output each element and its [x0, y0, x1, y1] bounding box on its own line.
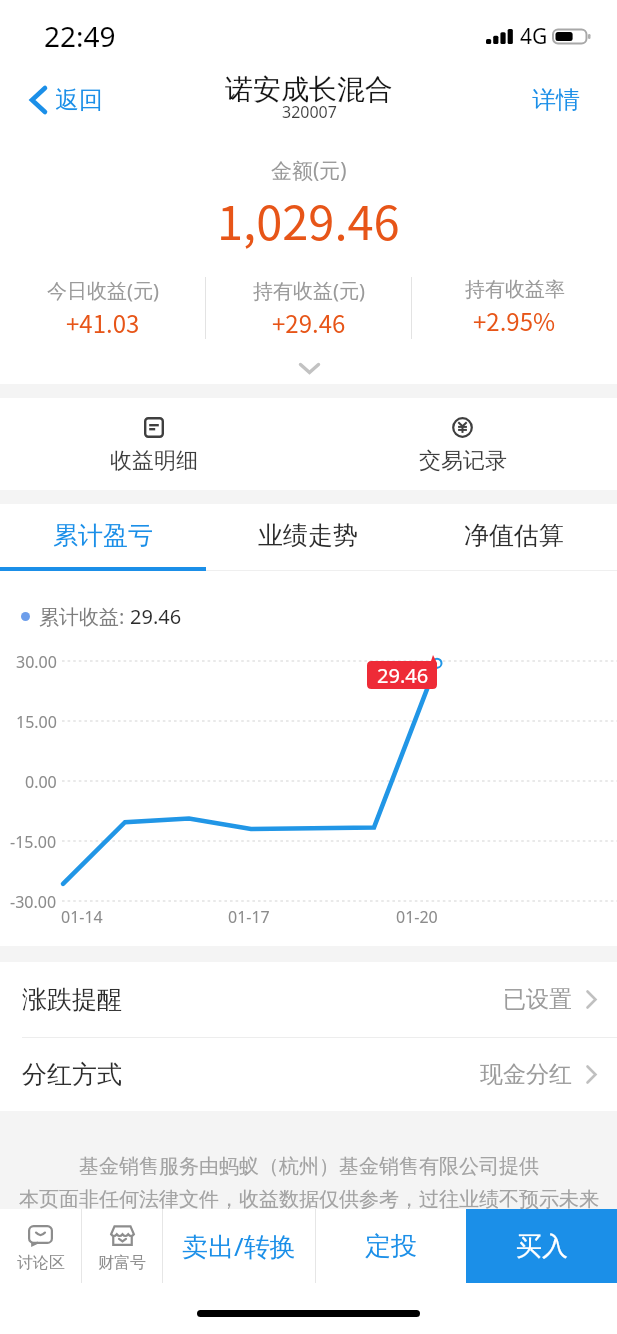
staticText: +2.95% — [473, 303, 556, 338]
staticText: 金额(元) — [271, 156, 347, 185]
staticText: 29.46 — [377, 662, 429, 689]
staticText: 净值估算 — [464, 520, 564, 551]
staticText: +41.03 — [66, 305, 140, 339]
button[interactable]: 业绩走势 — [205, 504, 411, 567]
button[interactable]: 卖出/转换 — [163, 1209, 315, 1283]
staticText: 收益明细 — [110, 447, 198, 475]
button[interactable]: 返回 — [0, 75, 119, 125]
button[interactable]: 收益明细 — [0, 398, 308, 490]
staticText: 讨论区 — [17, 1253, 65, 1273]
staticText: 卖出/转换 — [182, 1228, 296, 1264]
staticText: +29.46 — [272, 305, 346, 339]
staticText: 15.00 — [16, 711, 57, 733]
staticText: 已设置 — [503, 985, 572, 1014]
staticText: -30.00 — [10, 891, 57, 913]
button[interactable]: 净值估算 — [411, 504, 617, 567]
staticText: 返回 — [55, 85, 103, 115]
button[interactable]: 详情 — [506, 73, 617, 127]
staticText: 累计盈亏 — [53, 520, 153, 551]
staticText: 业绩走势 — [258, 520, 358, 551]
staticText: 30.00 — [16, 651, 57, 673]
staticText: 买入 — [516, 1230, 568, 1263]
staticText: 01-20 — [396, 906, 438, 928]
staticText: 320007 — [282, 101, 337, 123]
staticText: 累计收益: — [39, 603, 130, 630]
staticText: 持有收益率 — [465, 277, 565, 302]
staticText: 22:49 — [44, 17, 116, 55]
button[interactable]: 交易记录 — [308, 398, 617, 490]
staticText: 财富号 — [98, 1253, 146, 1273]
button[interactable]: 累计盈亏 — [0, 504, 205, 567]
staticText: -15.00 — [10, 831, 57, 853]
staticText: 详情 — [532, 85, 580, 115]
staticText: 今日收益(元) — [47, 277, 159, 304]
staticText: 1,029.46 — [217, 185, 400, 253]
staticText: 诺安成长混合 — [225, 72, 393, 107]
staticText: 现金分红 — [480, 1060, 572, 1089]
staticText: 持有收益(元) — [253, 277, 365, 304]
staticText: 基金销售服务由蚂蚁（杭州）基金销售有限公司提供 — [79, 1154, 539, 1179]
button[interactable]: Expand — [289, 358, 329, 378]
button[interactable]: Wealth account — [82, 1209, 162, 1283]
staticText: 定投 — [365, 1230, 417, 1263]
staticText: 4G — [520, 22, 548, 51]
staticText: 分红方式 — [22, 1059, 122, 1090]
staticText: 01-14 — [61, 906, 103, 928]
button[interactable]: 涨跌提醒 — [0, 962, 617, 1037]
staticText: 本页面非任何法律文件，收益数据仅供参考，过往业绩不预示未来 — [19, 1187, 599, 1212]
staticText: 0.00 — [25, 771, 57, 793]
button[interactable]: 分红方式 — [0, 1038, 617, 1111]
staticText: 交易记录 — [419, 447, 507, 475]
button[interactable]: 买入 — [466, 1209, 617, 1283]
button[interactable]: Discussion — [0, 1209, 81, 1283]
staticText: 01-17 — [228, 906, 270, 928]
staticText: 29.46 — [130, 603, 182, 630]
staticText: 涨跌提醒 — [22, 984, 122, 1015]
button[interactable]: 定投 — [316, 1209, 466, 1283]
